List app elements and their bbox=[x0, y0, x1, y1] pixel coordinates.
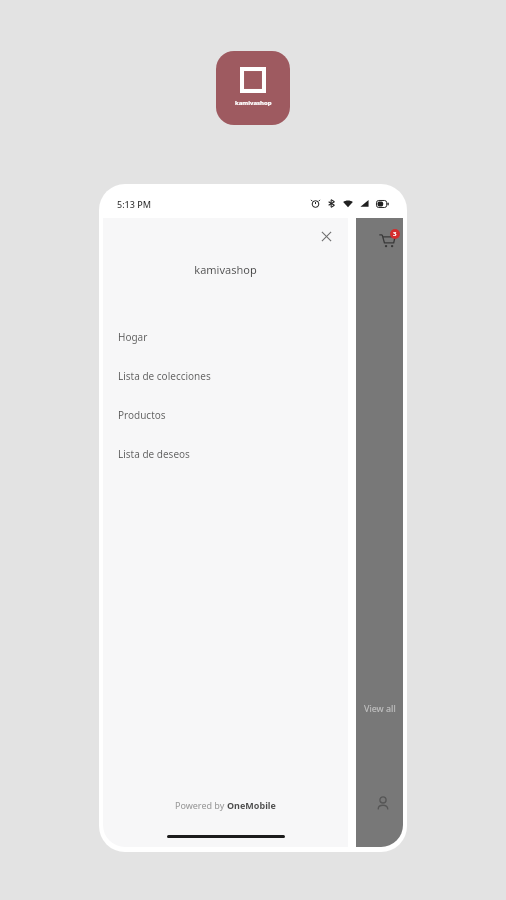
button[interactable]: Productos bbox=[103, 395, 348, 434]
staticText: Lista de colecciones bbox=[118, 369, 211, 383]
staticText: View all bbox=[364, 702, 396, 714]
button[interactable]: Cart bbox=[372, 226, 402, 256]
staticText: 3 bbox=[393, 230, 397, 238]
button[interactable]: Lista de colecciones bbox=[103, 356, 348, 395]
button[interactable]: Account bbox=[370, 790, 396, 816]
staticText: Productos bbox=[118, 408, 166, 422]
button[interactable]: kamivashop bbox=[216, 51, 290, 125]
staticText: Hogar bbox=[118, 330, 148, 344]
staticText: Lista de deseos bbox=[118, 447, 190, 461]
button[interactable]: Close bbox=[312, 222, 340, 250]
button[interactable]: Lista de deseos bbox=[103, 434, 348, 473]
button[interactable]: Hogar bbox=[103, 317, 348, 356]
staticText: kamivashop bbox=[103, 262, 348, 277]
staticText: OneMobile bbox=[227, 799, 276, 811]
staticText: kamivashop bbox=[235, 99, 272, 107]
staticText: Powered by bbox=[175, 799, 227, 811]
staticText: 5:13 PM bbox=[117, 198, 151, 210]
